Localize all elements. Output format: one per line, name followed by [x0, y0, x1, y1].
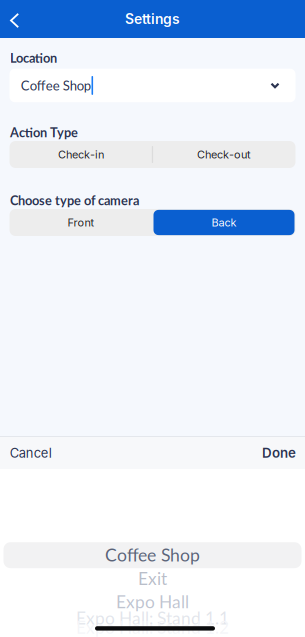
button[interactable]: Exit	[0, 570, 305, 586]
button[interactable]: Back	[152, 209, 295, 236]
staticText: Expo Hall: Stand 1.2	[76, 617, 229, 637]
staticText: Back	[211, 216, 236, 229]
staticText: Action Type	[10, 124, 78, 140]
staticText: Check-out	[197, 148, 251, 161]
staticText: Check-in	[58, 148, 104, 161]
button[interactable]: Back	[0, 1, 35, 39]
staticText: Settings	[125, 11, 180, 27]
staticText: Coffee Shop	[21, 78, 91, 93]
button[interactable]: Expo Hall	[0, 593, 305, 609]
staticText: Expo Hall: Stand 1.1	[76, 607, 229, 628]
staticText: Location	[10, 50, 57, 65]
staticText: Choose type of camera	[10, 192, 139, 208]
button[interactable]: Check-in	[9, 141, 152, 168]
staticText: Done	[262, 445, 296, 461]
button[interactable]: Done	[253, 437, 305, 469]
button[interactable]: Expo Hall: Stand 1.1	[0, 610, 305, 626]
staticText: Coffee Shop	[105, 544, 200, 565]
button[interactable]: Front	[9, 209, 152, 236]
button[interactable]: Cancel	[0, 437, 62, 469]
button[interactable]: Coffee Shop	[9, 69, 295, 102]
staticText: Exit	[138, 568, 167, 589]
button[interactable]: Check-out	[152, 141, 295, 168]
staticText: Expo Hall	[116, 591, 189, 612]
staticText: Cancel	[10, 445, 52, 461]
button[interactable]: Coffee Shop	[3, 542, 301, 568]
staticText: Front	[67, 216, 94, 229]
